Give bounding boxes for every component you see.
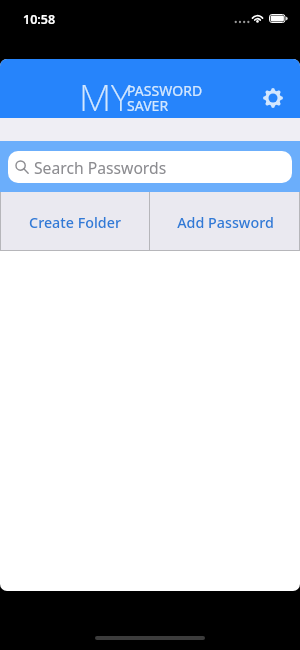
button[interactable]: Settings bbox=[253, 78, 292, 117]
button[interactable]: Create Folder bbox=[0, 192, 149, 251]
staticText: Search Passwords bbox=[34, 157, 167, 178]
staticText: 10:58 bbox=[23, 11, 56, 28]
staticText: MY bbox=[79, 71, 131, 121]
button[interactable]: Search Passwords bbox=[8, 151, 292, 183]
staticText: Add Password bbox=[177, 213, 274, 232]
staticText: Create Folder bbox=[29, 213, 121, 232]
button[interactable]: Add Password bbox=[150, 192, 300, 251]
staticText: PASSWORD SAVER bbox=[127, 81, 203, 115]
